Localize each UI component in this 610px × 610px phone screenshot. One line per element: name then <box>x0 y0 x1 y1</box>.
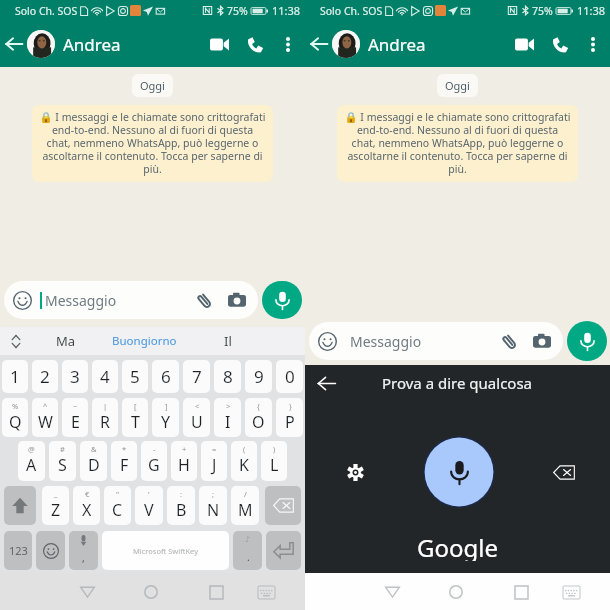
button[interactable]: ♪ <box>233 531 262 570</box>
button[interactable]: Back <box>0 23 27 65</box>
button[interactable]: # <box>49 441 76 481</box>
button[interactable]: 2 <box>32 360 58 393</box>
button[interactable]: " <box>104 486 131 525</box>
button[interactable]: € <box>73 486 100 525</box>
button[interactable]: [ <box>122 398 148 437</box>
button[interactable]: Enter <box>266 531 301 570</box>
button[interactable]: Recents <box>504 575 538 609</box>
button[interactable]: Attach <box>192 288 216 312</box>
button[interactable]: Il <box>188 327 268 355</box>
button[interactable]: Video call <box>506 26 542 62</box>
staticText: D <box>88 454 100 476</box>
button[interactable]: 7 <box>183 360 210 393</box>
button[interactable]: _ <box>42 486 69 525</box>
button[interactable]: < <box>183 398 210 437</box>
button[interactable]: ] <box>152 398 179 437</box>
button[interactable]: Attach <box>497 329 521 353</box>
button[interactable]: Microsoft SwiftKey <box>102 531 229 570</box>
button[interactable]: Keyboard <box>554 575 588 609</box>
button[interactable]: : <box>167 486 195 525</box>
staticText: ' <box>148 489 150 499</box>
staticText: 🔒 I messaggi e le chiamate sono crittogr… <box>39 110 266 177</box>
button[interactable]: & <box>80 441 107 481</box>
staticText: @ <box>28 444 35 454</box>
button[interactable]: Oggi <box>132 74 173 97</box>
button[interactable]: 123 <box>4 531 32 570</box>
button[interactable]: Record voice message <box>567 321 607 361</box>
button[interactable]: { <box>245 398 272 437</box>
staticText: ; <box>212 489 215 499</box>
button[interactable]: ; <box>199 486 227 525</box>
button[interactable]: Ma <box>31 327 100 355</box>
button[interactable]: Expand suggestions <box>0 327 31 355</box>
button[interactable]: Backspace <box>265 486 301 525</box>
button[interactable]: 0 <box>276 360 303 393</box>
button[interactable]: Home <box>439 575 473 609</box>
staticText: Microsoft SwiftKey <box>133 546 198 556</box>
staticText: J <box>212 454 217 476</box>
button[interactable]: Camera <box>225 288 249 312</box>
staticText: - <box>153 444 156 454</box>
button[interactable]: @ <box>18 441 45 481</box>
staticText: 4 <box>100 365 110 388</box>
staticText: X <box>82 499 92 521</box>
button[interactable]: 1 <box>2 360 28 393</box>
button[interactable]: 6 <box>152 360 179 393</box>
button[interactable]: Back <box>375 575 409 609</box>
staticText: Google <box>417 531 498 561</box>
button[interactable]: 🔒 I messaggi e le chiamate sono crittogr… <box>337 105 578 182</box>
button[interactable]: Recents <box>199 575 233 609</box>
button[interactable]: Back <box>70 575 104 609</box>
button[interactable]: ~ <box>62 398 88 437</box>
staticText: 11:38 <box>272 3 301 18</box>
button[interactable]: Settings <box>337 454 373 490</box>
button[interactable]: 8 <box>214 360 241 393</box>
button[interactable]: Camera <box>530 329 554 353</box>
button[interactable]: | <box>92 398 118 437</box>
button[interactable]: More options <box>578 29 608 59</box>
button[interactable]: ) <box>261 441 287 481</box>
button[interactable]: } <box>276 398 303 437</box>
button[interactable]: Shift <box>4 486 36 525</box>
button[interactable]: + <box>171 441 197 481</box>
button[interactable]: Home <box>134 575 168 609</box>
button[interactable]: Emoji <box>36 531 65 570</box>
button[interactable]: ^ <box>32 398 58 437</box>
staticText: 7 <box>192 365 202 388</box>
button[interactable]: More options <box>273 29 303 59</box>
button[interactable]: Messaggio <box>4 281 258 319</box>
button[interactable]: 4 <box>92 360 118 393</box>
staticText: I <box>225 411 231 433</box>
button[interactable]: Delete <box>546 454 582 490</box>
button[interactable]: Voice input <box>69 531 98 570</box>
button[interactable]: Call <box>237 26 273 62</box>
button[interactable]: 🔒 I messaggi e le chiamate sono crittogr… <box>32 105 273 182</box>
staticText: K <box>239 454 249 476</box>
button[interactable]: % <box>2 398 28 437</box>
button[interactable]: > <box>214 398 241 437</box>
button[interactable]: Oggi <box>437 74 478 97</box>
button[interactable]: 3 <box>62 360 88 393</box>
button[interactable]: - <box>141 441 167 481</box>
button[interactable]: 9 <box>245 360 272 393</box>
button[interactable]: Record voice message <box>262 281 302 319</box>
staticText: T <box>131 411 140 433</box>
button[interactable]: = <box>201 441 227 481</box>
staticText: Buongiorno <box>112 333 177 349</box>
button[interactable]: Microphone <box>423 436 495 508</box>
button[interactable]: Call <box>542 26 578 62</box>
button[interactable]: Keyboard <box>249 575 283 609</box>
button[interactable]: Back <box>305 23 332 65</box>
staticText: > <box>226 401 231 411</box>
button[interactable]: ' <box>135 486 163 525</box>
button[interactable]: Back <box>309 366 343 400</box>
staticText: N <box>207 499 220 521</box>
button[interactable]: 5 <box>122 360 148 393</box>
button[interactable]: Video call <box>201 26 237 62</box>
button[interactable]: ( <box>231 441 257 481</box>
button[interactable]: Buongiorno <box>100 327 188 355</box>
button[interactable]: Messaggio <box>309 322 563 360</box>
staticText: Y <box>161 411 171 433</box>
button[interactable]: / <box>231 486 259 525</box>
button[interactable]: * <box>111 441 137 481</box>
